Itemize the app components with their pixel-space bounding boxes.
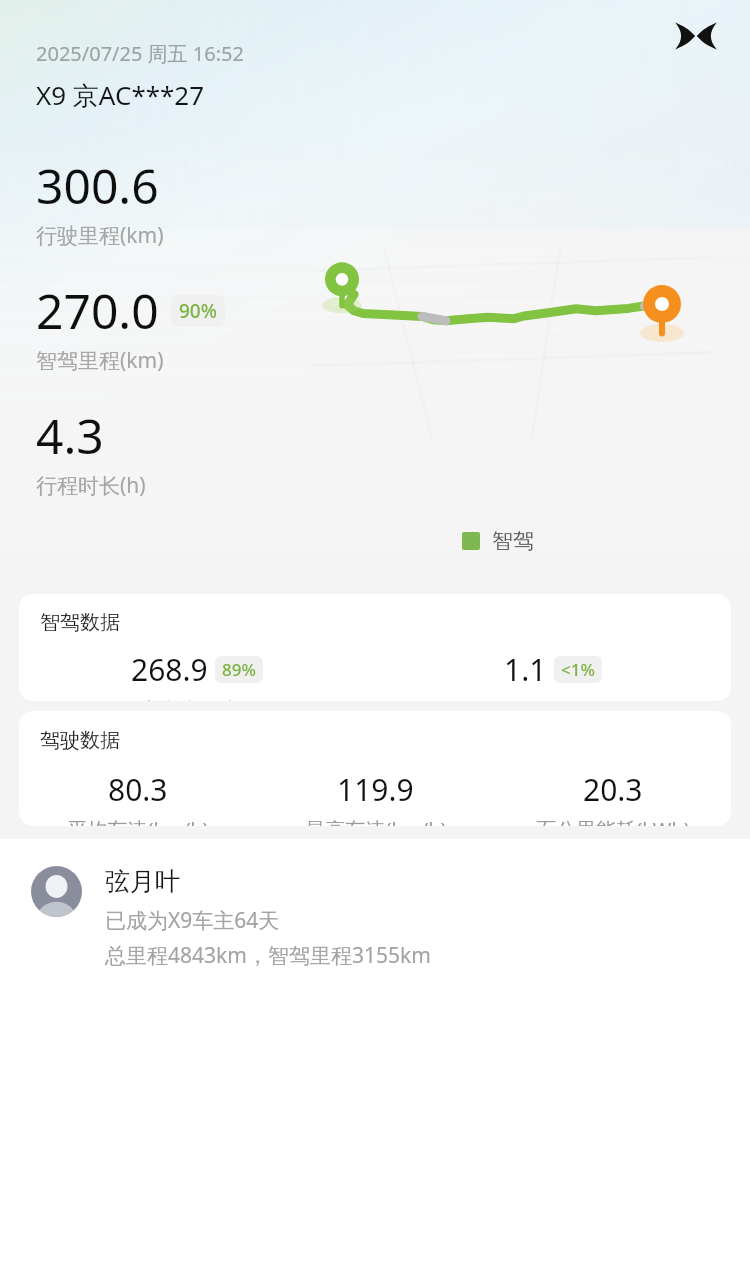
staticText: 300.6	[36, 153, 159, 218]
staticText: X9 京AC***27	[36, 77, 205, 113]
staticText: 智驾里程(km)	[36, 346, 164, 375]
staticText: 2025/07/25 周五 16:52	[36, 40, 244, 67]
staticText: 行驶里程(km)	[36, 221, 164, 250]
button[interactable]: XPeng logo	[670, 10, 722, 62]
staticText: 1.1	[504, 649, 547, 690]
staticText: 智驾数据	[40, 610, 120, 635]
staticText: 已成为X9车主64天	[105, 906, 280, 935]
staticText: 智驾	[492, 528, 534, 554]
staticText: 268.9	[131, 649, 208, 690]
staticText: 90%	[179, 298, 217, 324]
staticText: 270.0	[36, 278, 159, 343]
button[interactable]: 弦月叶	[0, 839, 750, 1265]
staticText: 行程时长(h)	[36, 471, 146, 500]
staticText: 导航辅助驾驶(km)	[116, 696, 278, 701]
staticText: <1%	[561, 658, 595, 681]
staticText: 4.3	[36, 403, 104, 468]
staticText: 弦月叶	[105, 866, 180, 897]
staticText: 89%	[222, 658, 256, 681]
staticText: 百公里能耗(kWh)	[536, 816, 690, 826]
staticText: 80.3	[108, 769, 168, 810]
staticText: 总里程4843km，智驾里程3155km	[105, 941, 431, 970]
button[interactable]: 智驾数据	[19, 594, 731, 701]
staticText: 最高车速(km/h)	[305, 816, 447, 826]
staticText: 119.9	[337, 769, 414, 810]
staticText: 平均车速(km/h)	[67, 816, 209, 826]
staticText: 20.3	[583, 769, 643, 810]
button[interactable]: 驾驶数据	[19, 711, 731, 826]
staticText: 驾驶数据	[40, 728, 120, 753]
